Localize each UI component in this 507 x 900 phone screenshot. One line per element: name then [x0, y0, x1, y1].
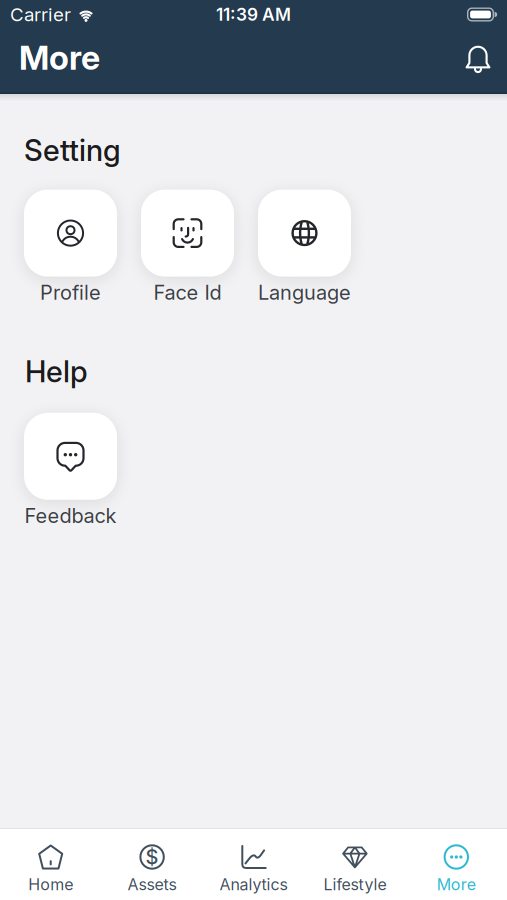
- button[interactable]: Home: [0, 845, 101, 894]
- staticText: Carrier: [10, 3, 71, 25]
- staticText: Profile: [40, 281, 101, 304]
- staticText: More: [437, 875, 476, 894]
- button[interactable]: Lifestyle: [304, 845, 406, 894]
- staticText: Face Id: [153, 281, 221, 304]
- button[interactable]: Face Id: [141, 190, 234, 304]
- staticText: Feedback: [24, 504, 116, 527]
- staticText: Setting: [24, 133, 121, 168]
- staticText: More: [19, 38, 100, 77]
- staticText: Analytics: [219, 875, 287, 894]
- button[interactable]: Profile: [24, 190, 117, 304]
- button[interactable]: Notifications: [463, 38, 493, 77]
- staticText: Language: [258, 281, 351, 304]
- staticText: Lifestyle: [323, 875, 386, 894]
- staticText: Home: [28, 875, 73, 894]
- button[interactable]: Feedback: [24, 413, 117, 527]
- button[interactable]: Language: [258, 190, 351, 304]
- button[interactable]: More: [406, 845, 507, 894]
- staticText: $: [146, 845, 159, 869]
- button[interactable]: $: [101, 845, 203, 894]
- staticText: Help: [25, 354, 88, 389]
- staticText: Assets: [128, 875, 177, 894]
- button[interactable]: Analytics: [203, 845, 304, 894]
- staticText: 11:39 AM: [216, 4, 291, 25]
